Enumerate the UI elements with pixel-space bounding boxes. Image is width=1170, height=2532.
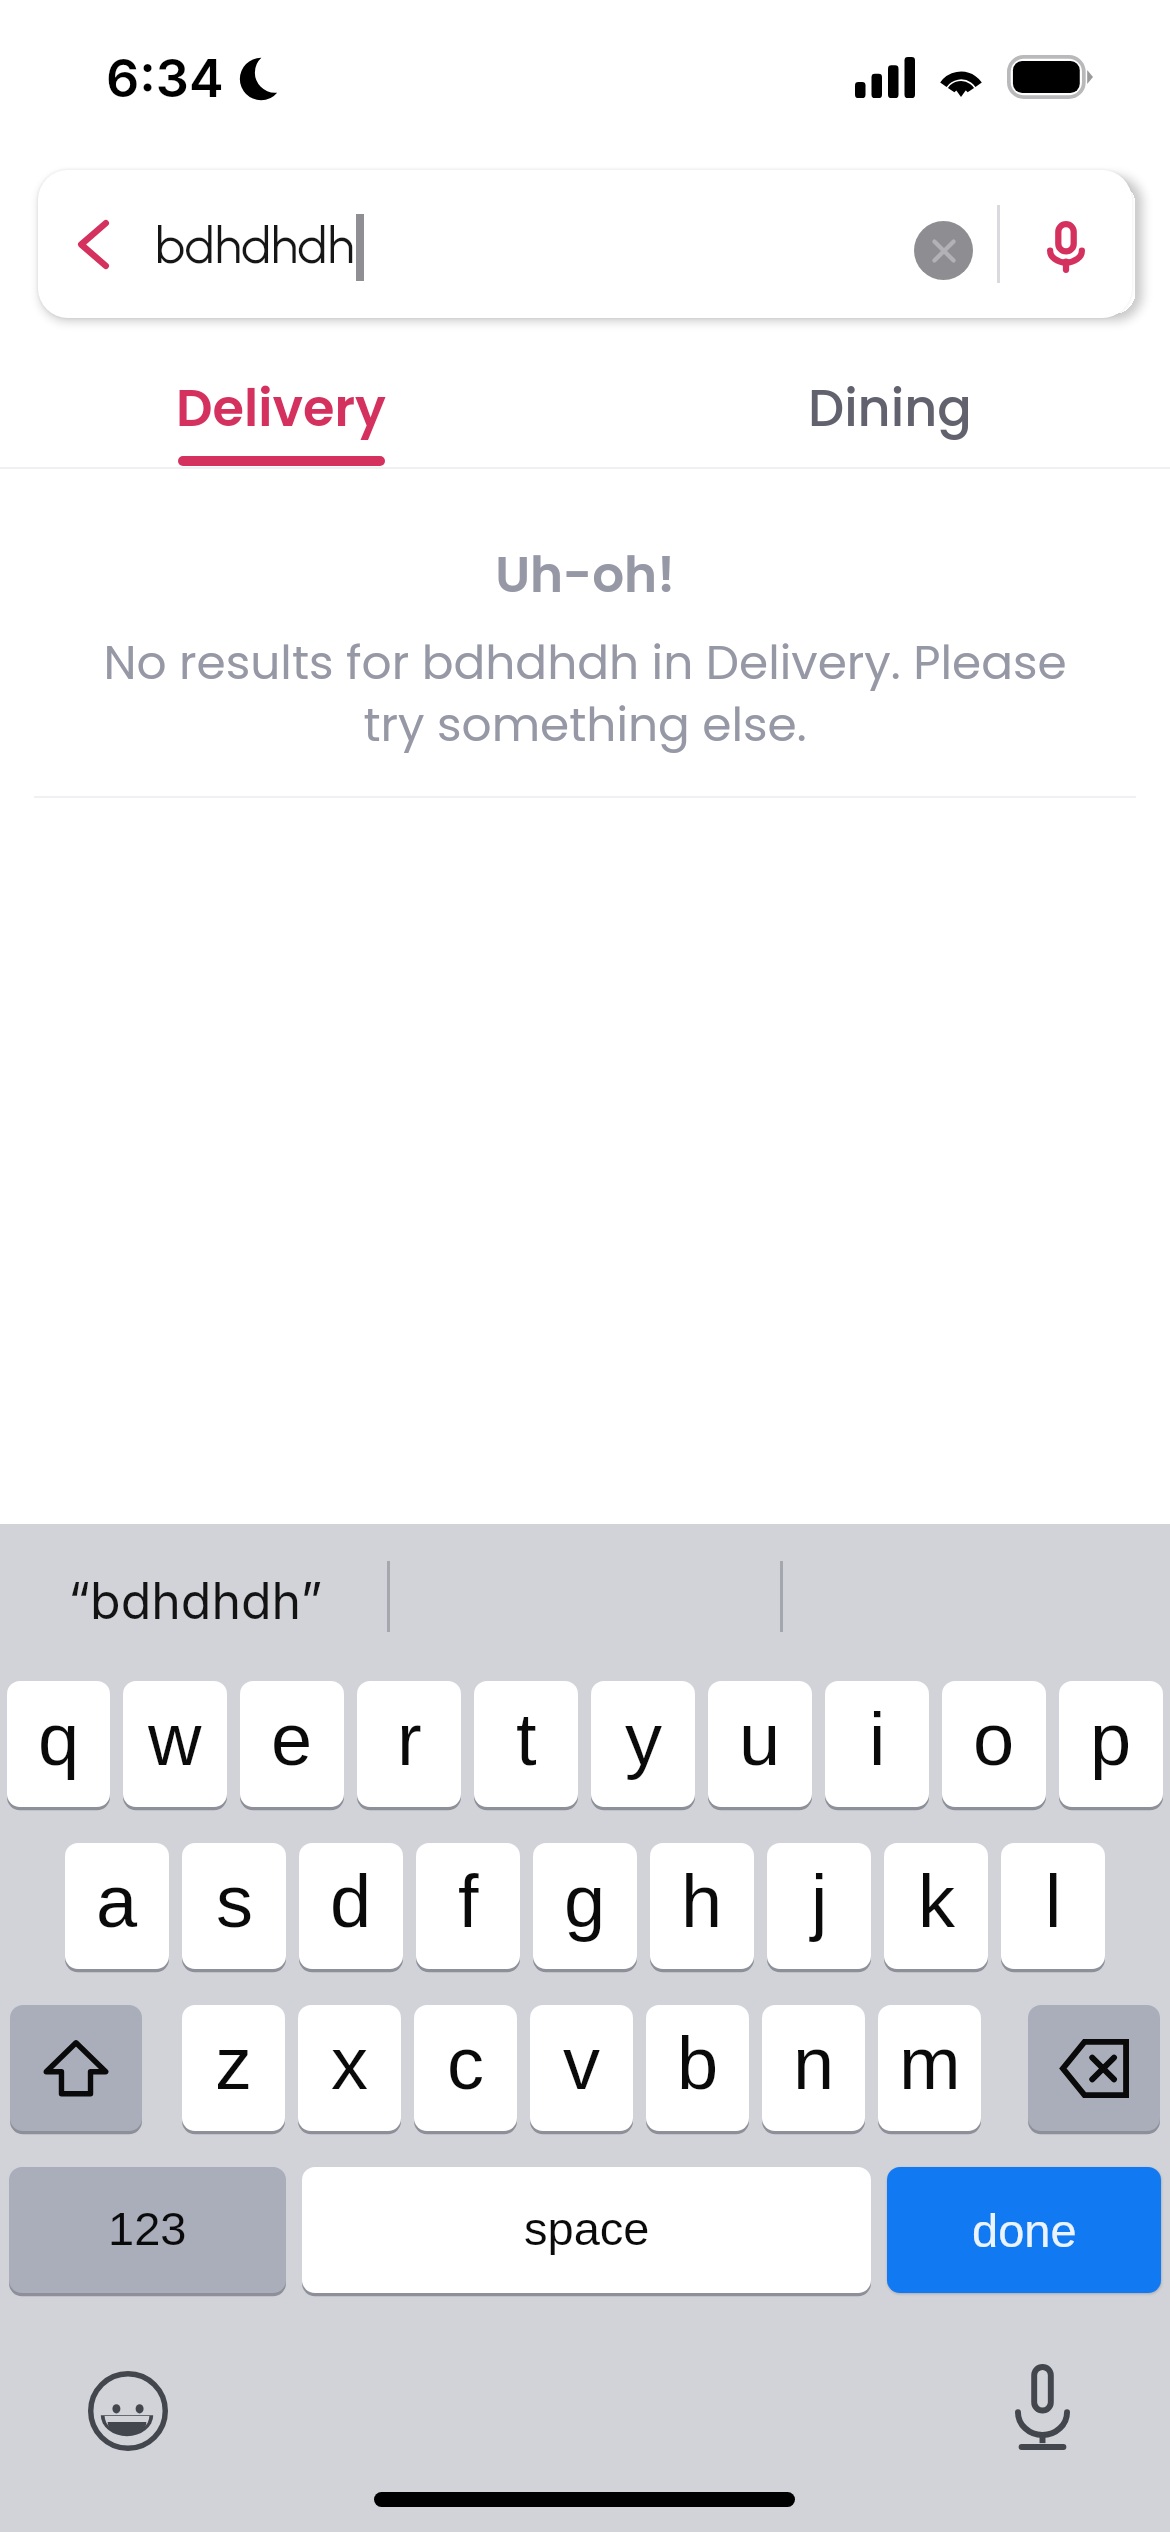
staticText: o <box>973 1698 1015 1781</box>
staticText: c <box>447 2022 484 2105</box>
button[interactable]: Dictation <box>992 2357 1092 2457</box>
button[interactable]: l <box>1001 1843 1105 1969</box>
button[interactable]: d <box>299 1843 403 1969</box>
staticText: g <box>564 1860 606 1943</box>
button[interactable]: b <box>646 2005 749 2131</box>
button[interactable]: r <box>357 1681 461 1807</box>
button[interactable]: c <box>414 2005 517 2131</box>
button[interactable]: Back <box>38 170 1132 318</box>
button[interactable]: k <box>884 1843 988 1969</box>
button[interactable]: Backspace <box>1028 2005 1160 2131</box>
button[interactable]: Emoji keyboard <box>78 2361 178 2461</box>
staticText: space <box>524 2202 650 2255</box>
staticText: r <box>397 1698 422 1781</box>
staticText: 6:34 <box>106 47 224 110</box>
button[interactable]: y <box>591 1681 695 1807</box>
staticText: f <box>458 1860 479 1943</box>
staticText: v <box>563 2022 600 2105</box>
staticText: q <box>38 1698 80 1781</box>
staticText: p <box>1090 1698 1132 1781</box>
button[interactable]: Shift <box>10 2005 142 2131</box>
staticText: b <box>677 2022 719 2105</box>
button[interactable]: z <box>182 2005 285 2131</box>
staticText: d <box>330 1860 372 1943</box>
staticText: h <box>681 1860 723 1943</box>
button[interactable]: a <box>65 1843 169 1969</box>
staticText: x <box>331 2022 368 2105</box>
button[interactable]: w <box>123 1681 227 1807</box>
staticText: a <box>96 1860 138 1943</box>
button[interactable]: space <box>302 2167 871 2293</box>
staticText: Uh-oh! <box>0 540 1170 610</box>
staticText: i <box>869 1698 886 1781</box>
button[interactable]: n <box>762 2005 865 2131</box>
button[interactable]: Clear text <box>914 221 973 280</box>
staticText: done <box>972 2204 1077 2257</box>
staticText: t <box>516 1698 537 1781</box>
staticText: No results for bdhdhdh in Delivery. Plea… <box>88 630 1082 757</box>
staticText: k <box>918 1860 955 1943</box>
staticText: l <box>1045 1860 1062 1943</box>
staticText: w <box>148 1698 202 1781</box>
staticText: “bdhdhdh” <box>68 1571 323 1631</box>
button[interactable]: x <box>298 2005 401 2131</box>
button[interactable]: h <box>650 1843 754 1969</box>
staticText: m <box>899 2022 961 2105</box>
button[interactable]: u <box>708 1681 812 1807</box>
button[interactable]: o <box>942 1681 1046 1807</box>
button[interactable]: g <box>533 1843 637 1969</box>
button[interactable]: done <box>887 2167 1161 2293</box>
staticText: 123 <box>108 2202 187 2255</box>
button[interactable]: i <box>825 1681 929 1807</box>
button[interactable]: f <box>416 1843 520 1969</box>
button[interactable]: j <box>767 1843 871 1969</box>
button[interactable]: e <box>240 1681 344 1807</box>
staticText: s <box>216 1860 253 1943</box>
button[interactable]: Dining <box>710 358 1070 469</box>
staticText: y <box>625 1698 662 1781</box>
staticText: z <box>215 2022 252 2105</box>
staticText: bdhdhdh <box>155 215 355 275</box>
button[interactable]: q <box>7 1681 110 1807</box>
staticText: Delivery <box>176 372 386 443</box>
button[interactable]: s <box>182 1843 286 1969</box>
button[interactable]: p <box>1059 1681 1163 1807</box>
button[interactable]: Voice search <box>1030 208 1102 280</box>
button[interactable]: t <box>474 1681 578 1807</box>
staticText: j <box>811 1860 828 1943</box>
button[interactable]: v <box>530 2005 633 2131</box>
staticText: n <box>793 2022 835 2105</box>
button[interactable]: m <box>878 2005 981 2131</box>
staticText: e <box>271 1698 313 1781</box>
staticText: u <box>739 1698 781 1781</box>
staticText: Dining <box>808 372 972 443</box>
button[interactable]: 123 <box>9 2167 286 2293</box>
button[interactable]: Delivery <box>101 358 461 469</box>
other: Back <box>78 220 109 269</box>
